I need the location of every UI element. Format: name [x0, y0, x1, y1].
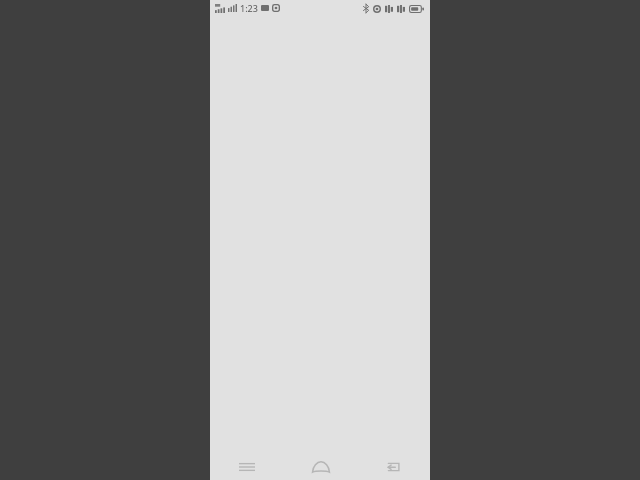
button[interactable]: Recent apps [210, 454, 284, 480]
staticText: 1:23 [240, 2, 258, 14]
button[interactable]: Home [284, 454, 357, 480]
button[interactable]: Back [357, 454, 430, 480]
